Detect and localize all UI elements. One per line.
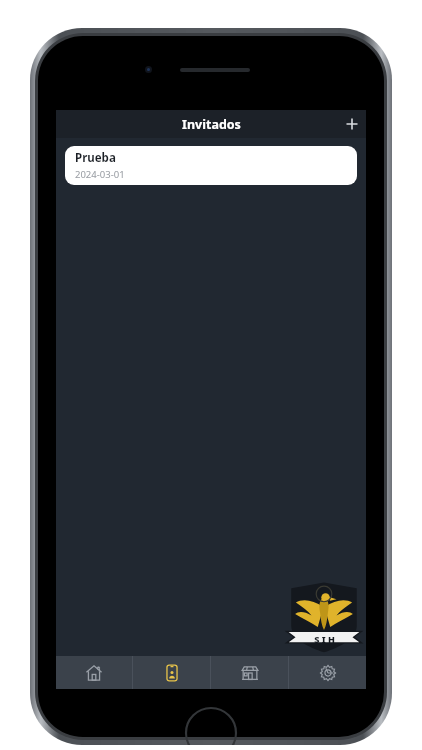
button[interactable]: Guests xyxy=(133,656,210,689)
staticText: Invitados xyxy=(182,116,241,133)
button[interactable]: Store xyxy=(211,656,288,689)
button[interactable]: Home xyxy=(56,656,132,689)
staticText: S I H xyxy=(314,633,335,645)
button[interactable]: Settings xyxy=(289,656,366,689)
staticText: Prueba xyxy=(75,150,116,166)
other: Home button xyxy=(185,707,237,745)
button[interactable]: Prueba xyxy=(65,146,357,185)
staticText: 2024-03-01 xyxy=(75,168,125,181)
button[interactable]: Add guest xyxy=(338,110,366,138)
